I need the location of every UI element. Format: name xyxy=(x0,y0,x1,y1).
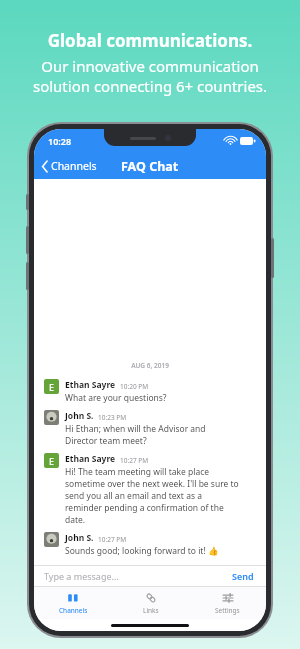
staticText: 10:23 PM xyxy=(98,413,127,422)
staticText: E xyxy=(49,381,55,393)
button[interactable]: Type a message... xyxy=(44,570,230,582)
other: Settings xyxy=(222,592,234,604)
button[interactable]: Settings xyxy=(189,587,266,619)
button[interactable]: John S. xyxy=(34,407,266,450)
other: Channels xyxy=(67,592,79,604)
button[interactable]: Channels xyxy=(34,587,112,619)
staticText: 10:27 PM xyxy=(120,456,149,465)
button[interactable]: John S. xyxy=(34,529,266,560)
staticText: What are your questions? xyxy=(65,392,167,404)
button[interactable]: Send xyxy=(230,567,256,585)
staticText: Hi Ethan; when will the Advisor and xyxy=(65,423,206,435)
staticText: 10:20 PM xyxy=(120,382,149,391)
staticText: sometime over the next week. I'll be sur… xyxy=(65,478,239,490)
staticText: reminder pending a confirmation of the xyxy=(65,502,224,514)
staticText: E xyxy=(49,455,55,467)
button[interactable]: E xyxy=(34,376,266,407)
staticText: Sounds good; looking forward to it! 👍 xyxy=(65,545,219,557)
staticText: Director team meet? xyxy=(65,435,147,447)
button[interactable]: E xyxy=(34,450,266,529)
staticText: John S. xyxy=(65,410,94,422)
staticText: solution connecting 6+ countries. xyxy=(4,76,296,96)
other: Links xyxy=(145,592,157,604)
staticText: Settings xyxy=(215,606,240,615)
staticText: Our innovative communication xyxy=(4,56,296,76)
staticText: Global communications. xyxy=(4,29,296,52)
staticText: Hi! The team meeting will take place xyxy=(65,466,210,478)
staticText: 10:28 xyxy=(48,135,72,147)
button[interactable]: Links xyxy=(112,587,189,619)
staticText: Links xyxy=(143,606,159,615)
button[interactable]: Channels xyxy=(39,155,100,177)
staticText: FAQ Chat xyxy=(121,158,179,175)
staticText: Channels xyxy=(51,159,97,173)
staticText: Channels xyxy=(59,606,88,615)
staticText: AUG 6, 2019 xyxy=(34,361,266,370)
staticText: send you all an email and text as a xyxy=(65,490,202,502)
staticText: Ethan Sayre xyxy=(65,453,116,465)
staticText: Ethan Sayre xyxy=(65,379,116,391)
staticText: date. xyxy=(65,514,86,526)
staticText: 10:27 PM xyxy=(98,535,127,544)
staticText: John S. xyxy=(65,532,94,544)
